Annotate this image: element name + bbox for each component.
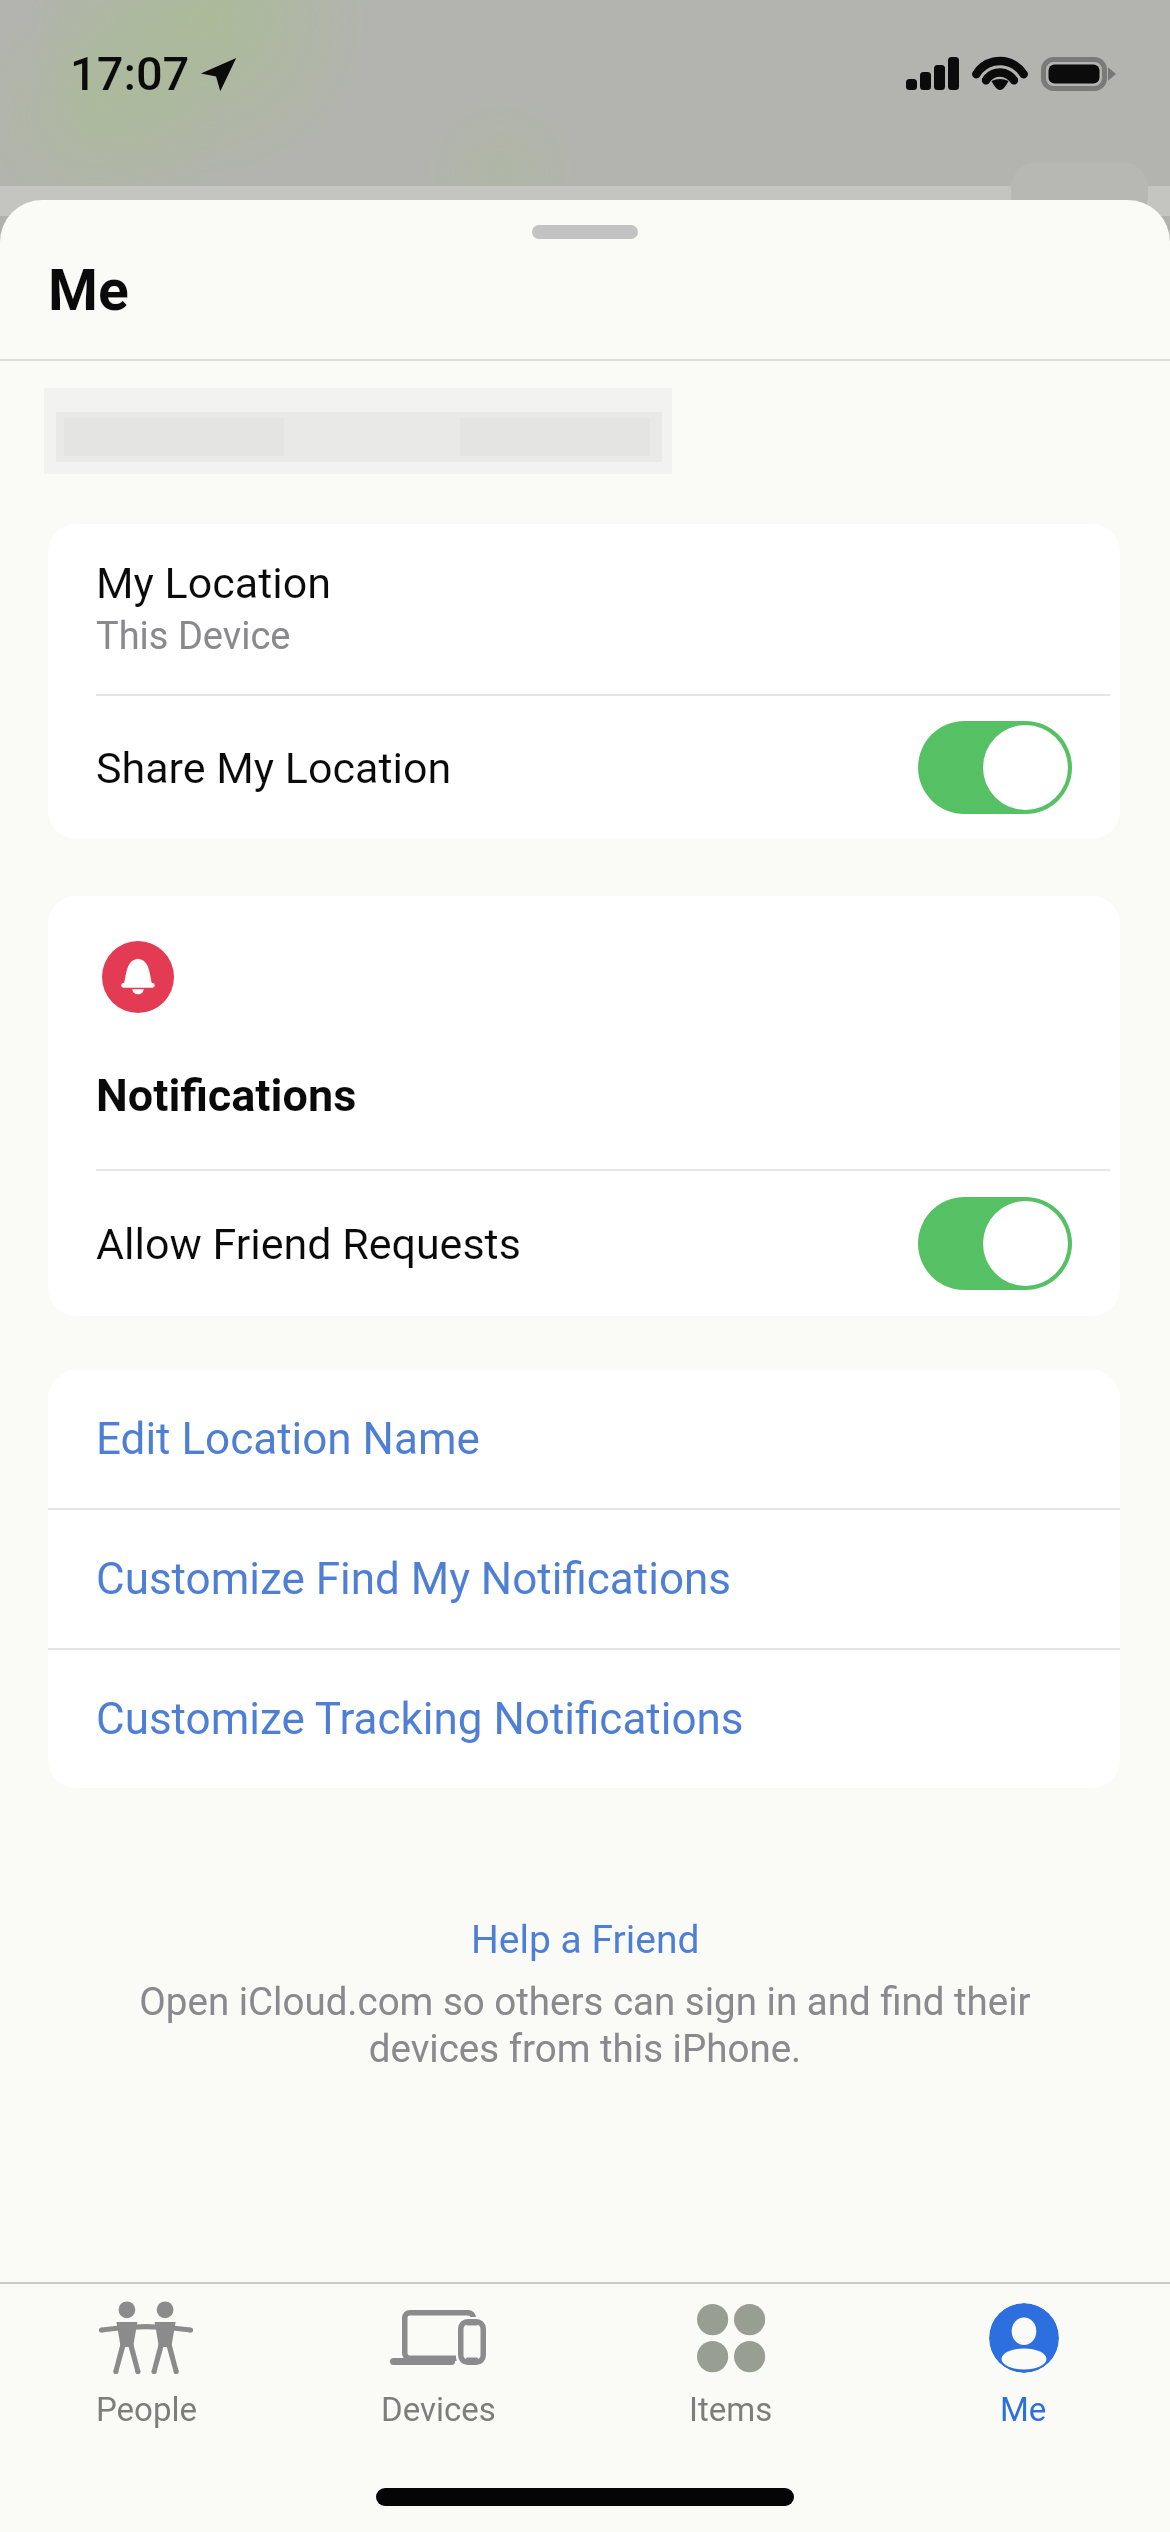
staticText: People	[96, 2390, 197, 2429]
button[interactable]: Items	[584, 2284, 877, 2442]
button[interactable]: Me	[877, 2284, 1170, 2442]
staticText: Share My Location	[96, 743, 452, 793]
staticText: Customize Find My Notifications	[96, 1553, 731, 1605]
button[interactable]: Allow Friend Requests	[48, 1171, 1120, 1316]
button[interactable]: Notifications	[48, 896, 1120, 1169]
button[interactable]: Toggle on	[918, 1197, 1072, 1290]
staticText: This Device	[96, 614, 291, 659]
button[interactable]: Customize Tracking Notifications	[48, 1650, 1120, 1788]
button[interactable]: Help a Friend	[443, 1911, 728, 1969]
staticText: Allow Friend Requests	[96, 1219, 521, 1269]
staticText: Edit Location Name	[96, 1413, 480, 1465]
staticText: Help a Friend	[471, 1917, 700, 1963]
staticText: Me	[1000, 2390, 1047, 2429]
staticText: Open iCloud.com so others can sign in an…	[70, 1979, 1100, 2072]
staticText: Devices	[381, 2390, 496, 2429]
button[interactable]: Edit Location Name	[48, 1370, 1120, 1508]
staticText: Customize Tracking Notifications	[96, 1693, 744, 1745]
staticText: Notifications	[96, 1069, 357, 1122]
staticText: Items	[689, 2390, 773, 2429]
button[interactable]: Share My Location	[48, 696, 1120, 839]
button[interactable]: People	[0, 2284, 292, 2442]
button[interactable]: Toggle on	[918, 721, 1072, 814]
staticText: Me	[48, 257, 129, 324]
button[interactable]: Customize Find My Notifications	[48, 1510, 1120, 1648]
staticText: 17:07	[70, 46, 190, 101]
staticText: My Location	[96, 558, 331, 608]
button[interactable]: Devices	[292, 2284, 584, 2442]
button[interactable]: My Location	[48, 524, 1120, 694]
